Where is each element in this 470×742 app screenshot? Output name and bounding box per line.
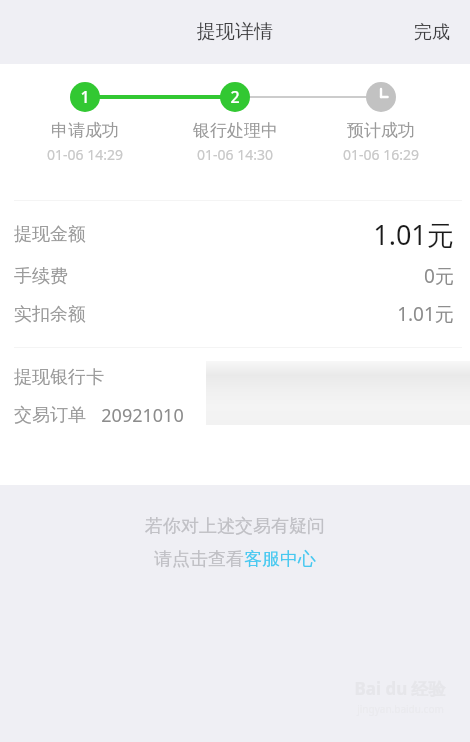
staticText: 提现金额: [14, 223, 86, 246]
staticText: Bai du 经验: [354, 677, 446, 700]
staticText: 预计成功: [347, 120, 415, 141]
staticText: 20921010: [101, 403, 184, 428]
staticText: 申请成功: [51, 120, 119, 141]
staticText: 1.01元: [397, 301, 454, 327]
other: Pending – estimated completion: [366, 82, 396, 112]
button[interactable]: 提现金额: [0, 211, 470, 257]
button[interactable]: 手续费: [0, 257, 470, 295]
staticText: 1.01元: [373, 216, 454, 253]
button[interactable]: 若你对上述交易有疑问: [0, 511, 470, 575]
button[interactable]: 完成: [394, 7, 470, 58]
staticText: 提现详情: [197, 20, 273, 44]
staticText: 0元: [424, 263, 454, 289]
staticText: 完成: [414, 21, 450, 44]
button[interactable]: 实扣余额: [0, 295, 470, 333]
staticText: 01-06 16:29: [343, 145, 419, 164]
staticText: 2: [230, 86, 240, 108]
staticText: 银行处理中: [193, 120, 278, 141]
staticText: 实扣余额: [14, 303, 86, 326]
staticText: 01-06 14:30: [197, 145, 273, 164]
staticText: 1: [80, 86, 90, 108]
staticText: 客服中心: [244, 548, 316, 571]
staticText: 手续费: [14, 265, 68, 288]
staticText: 交易订单: [14, 404, 86, 427]
staticText: 01-06 14:29: [47, 145, 123, 164]
staticText: 请点击查看: [154, 548, 244, 571]
staticText: 若你对上述交易有疑问: [145, 515, 325, 538]
staticText: 提现银行卡: [14, 366, 104, 389]
